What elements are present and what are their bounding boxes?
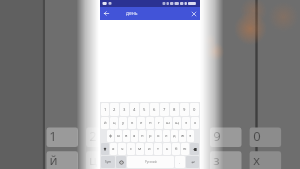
staticText: щ (175, 120, 179, 126)
staticText: н (149, 120, 152, 126)
button[interactable]: л (163, 130, 170, 142)
staticText: 2 (89, 127, 97, 145)
button[interactable]: у (119, 117, 127, 129)
staticText: ф (109, 133, 113, 139)
button[interactable]: я (110, 143, 117, 155)
button[interactable]: 8 (170, 103, 179, 116)
button[interactable]: и (145, 143, 153, 155)
button[interactable]: т (154, 143, 162, 155)
button[interactable]: Enter (186, 156, 199, 168)
button[interactable]: о (155, 130, 162, 142)
button[interactable]: ж (179, 130, 186, 142)
staticText: х (253, 151, 260, 169)
button[interactable]: Space (127, 156, 174, 168)
button[interactable]: 7 (160, 103, 169, 116)
button[interactable]: д (171, 130, 178, 142)
staticText: т (157, 146, 159, 152)
button[interactable]: Back (100, 7, 113, 20)
button[interactable]: й (101, 117, 109, 129)
button[interactable]: 2 (110, 103, 119, 116)
button[interactable]: 1 (101, 103, 109, 116)
button[interactable]: Voice input (116, 156, 126, 168)
button[interactable]: Backspace (190, 143, 199, 155)
button[interactable]: а (131, 130, 138, 142)
button[interactable]: ы (115, 130, 122, 142)
button[interactable]: Sym (101, 156, 115, 168)
staticText: Sym (105, 160, 111, 164)
staticText: 4 (133, 107, 136, 113)
button[interactable]: Shift (101, 143, 109, 155)
staticText: ю (183, 146, 187, 152)
staticText: 1 (104, 107, 107, 113)
button[interactable]: 5 (140, 103, 149, 116)
button[interactable]: г (155, 117, 163, 129)
staticText: ь (166, 146, 169, 152)
button[interactable]: с (127, 143, 135, 155)
staticText: я (112, 146, 115, 152)
staticText: э (189, 133, 192, 139)
button[interactable]: ь (163, 143, 171, 155)
staticText: р (149, 133, 152, 139)
button[interactable]: щ (173, 117, 181, 129)
staticText: у (122, 120, 125, 126)
button[interactable]: ю (181, 143, 189, 155)
button[interactable]: н (146, 117, 154, 129)
button[interactable]: 3 (120, 103, 129, 116)
staticText: 6 (153, 107, 156, 113)
staticText: и (148, 146, 151, 152)
button[interactable]: Clear (187, 7, 200, 20)
button[interactable]: 9 (180, 103, 189, 116)
staticText: 9 (213, 127, 221, 145)
button[interactable]: 4 (130, 103, 139, 116)
staticText: ы (117, 133, 121, 139)
button[interactable]: м (136, 143, 144, 155)
button[interactable]: ш (164, 117, 172, 129)
staticText: . (179, 160, 181, 165)
staticText: м (138, 146, 142, 152)
button[interactable]: п (139, 130, 146, 142)
button[interactable]: 0 (190, 103, 199, 116)
staticText: ж (181, 133, 185, 139)
staticText: д (173, 133, 176, 139)
staticText: б (175, 146, 178, 152)
staticText: 2 (113, 107, 116, 113)
button[interactable]: е (137, 117, 145, 129)
staticText: й (104, 120, 107, 126)
button[interactable]: 6 (150, 103, 159, 116)
staticText: ч (121, 146, 124, 152)
staticText: 1 (49, 127, 57, 145)
button[interactable]: в (123, 130, 130, 142)
button[interactable]: х (191, 117, 199, 129)
button[interactable]: день (113, 7, 187, 20)
staticText: 9 (183, 107, 186, 113)
button[interactable]: к (128, 117, 136, 129)
button[interactable]: б (172, 143, 180, 155)
staticText: п (141, 133, 144, 139)
staticText: 8 (173, 107, 176, 113)
staticText: е (140, 120, 143, 126)
staticText: х (194, 120, 197, 126)
button[interactable]: ф (107, 130, 114, 142)
button[interactable]: з (182, 117, 190, 129)
staticText: л (165, 133, 168, 139)
staticText: ц (89, 151, 97, 169)
staticText: к (131, 120, 134, 126)
button[interactable]: р (147, 130, 154, 142)
staticText: Русский (145, 160, 157, 164)
staticText: з (185, 120, 188, 126)
staticText: 3 (123, 107, 126, 113)
staticText: ц (113, 120, 116, 126)
staticText: с (130, 146, 133, 152)
staticText: 0 (193, 107, 196, 113)
button[interactable]: ч (118, 143, 126, 155)
staticText: й (49, 151, 58, 169)
button[interactable]: ц (110, 117, 118, 129)
staticText: 7 (163, 107, 166, 113)
staticText: день (126, 10, 138, 17)
button[interactable]: э (187, 130, 194, 142)
staticText: ш (166, 120, 170, 126)
staticText: в (125, 133, 128, 139)
staticText: г (158, 120, 160, 126)
staticText: з (213, 151, 220, 169)
